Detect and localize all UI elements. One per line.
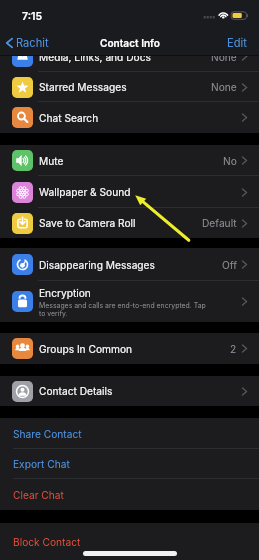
- staticText: Off: [222, 259, 237, 271]
- staticText: Starred Messages: [39, 81, 127, 93]
- button[interactable]: Export Chat: [0, 449, 259, 479]
- staticText: No: [223, 155, 237, 167]
- button[interactable]: Rachit: [3, 33, 52, 52]
- button[interactable]: Block Contact: [0, 523, 259, 560]
- button[interactable]: Disappearing Messages: [0, 248, 259, 281]
- staticText: Rachit: [16, 36, 49, 49]
- staticText: Contact Details: [39, 385, 113, 397]
- staticText: Groups In Common: [39, 343, 133, 355]
- staticText: Messages and calls are end-to-end encryp…: [39, 301, 206, 317]
- button[interactable]: Starred Messages: [0, 72, 259, 102]
- button[interactable]: Wallpaper & Sound: [0, 176, 259, 208]
- button[interactable]: Edit: [224, 33, 250, 52]
- button[interactable]: Contact Details: [0, 376, 259, 406]
- staticText: 7:15: [22, 10, 43, 23]
- staticText: Clear Chat: [13, 489, 64, 501]
- staticText: Export Chat: [13, 458, 70, 470]
- button[interactable]: Save to Camera Roll: [0, 208, 259, 238]
- staticText: Disappearing Messages: [39, 259, 155, 271]
- staticText: None: [211, 81, 237, 93]
- staticText: Media, Links, and Docs: [39, 51, 151, 63]
- staticText: None: [211, 51, 237, 63]
- staticText: Encryption: [39, 287, 91, 299]
- staticText: Chat Search: [39, 112, 99, 124]
- staticText: Save to Camera Roll: [39, 217, 136, 229]
- staticText: Wallpaper & Sound: [39, 186, 131, 198]
- staticText: Default: [202, 217, 237, 229]
- button[interactable]: Clear Chat: [0, 479, 259, 510]
- staticText: Contact Info: [100, 37, 160, 49]
- staticText: 2: [230, 343, 237, 355]
- staticText: Mute: [39, 155, 64, 167]
- button[interactable]: Share Contact: [0, 418, 259, 449]
- button[interactable]: Chat Search: [0, 102, 259, 133]
- button[interactable]: Mute: [0, 145, 259, 176]
- staticText: Block Contact: [13, 536, 81, 548]
- button[interactable]: Groups In Common: [0, 333, 259, 364]
- staticText: Share Contact: [13, 428, 82, 440]
- button[interactable]: Media, Links, and Docs: [0, 41, 259, 72]
- button[interactable]: Encryption: [0, 281, 259, 322]
